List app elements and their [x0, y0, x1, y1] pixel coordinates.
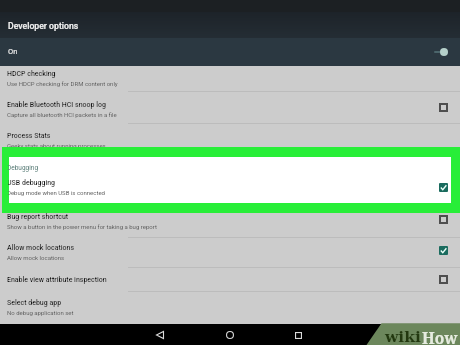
button[interactable]: USB debugging	[8, 177, 450, 199]
button[interactable]: On	[0, 38, 460, 66]
staticText: How	[422, 327, 458, 345]
staticText: Geeky stats about running processes	[7, 142, 106, 149]
staticText: Use HDCP checking for DRM content only	[7, 80, 118, 87]
button[interactable]: Home	[195, 324, 265, 345]
staticText: Process Stats	[7, 132, 51, 140]
staticText: Bug report shortcut	[7, 213, 69, 221]
staticText: Show a button in the power menu for taki…	[7, 223, 157, 230]
staticText: Allow mock locations	[7, 254, 65, 261]
button[interactable]: HDCP checking	[0, 68, 460, 90]
button[interactable]: Allow mock locations	[0, 242, 460, 264]
staticText: Debugging	[8, 164, 39, 172]
staticText: No debug application set	[7, 309, 74, 316]
staticText: wiki	[385, 327, 421, 345]
staticText: Capture all bluetooth HCI packets in a f…	[7, 111, 117, 118]
button[interactable]: Bug report shortcut	[0, 211, 460, 233]
button[interactable]: Enable view attribute inspection	[0, 274, 460, 287]
staticText: Enable Bluetooth HCI snoop log	[7, 101, 106, 109]
staticText: Allow mock locations	[7, 244, 74, 252]
staticText: Developer options	[8, 21, 79, 31]
button[interactable]: Select debug app	[0, 297, 460, 319]
button[interactable]: Recent apps	[263, 324, 333, 345]
staticText: USB debugging	[8, 179, 56, 187]
staticText: Select debug app	[7, 299, 62, 307]
button[interactable]: Enable Bluetooth HCI snoop log	[0, 99, 460, 121]
button[interactable]: Process Stats	[0, 130, 460, 152]
staticText: Debug mode when USB is connected	[8, 189, 105, 196]
staticText: HDCP checking	[7, 70, 56, 78]
staticText: On	[8, 47, 18, 56]
button[interactable]: Back	[125, 324, 195, 345]
staticText: Enable view attribute inspection	[7, 276, 107, 284]
